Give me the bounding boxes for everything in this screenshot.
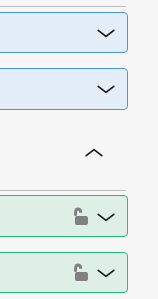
button[interactable]: Unlocked, expand section	[0, 195, 128, 237]
button[interactable]: Expand section	[0, 12, 128, 53]
button[interactable]: Unlocked, expand section	[0, 252, 128, 293]
button[interactable]: Expand section	[0, 68, 128, 110]
button[interactable]: Collapse	[84, 146, 104, 159]
